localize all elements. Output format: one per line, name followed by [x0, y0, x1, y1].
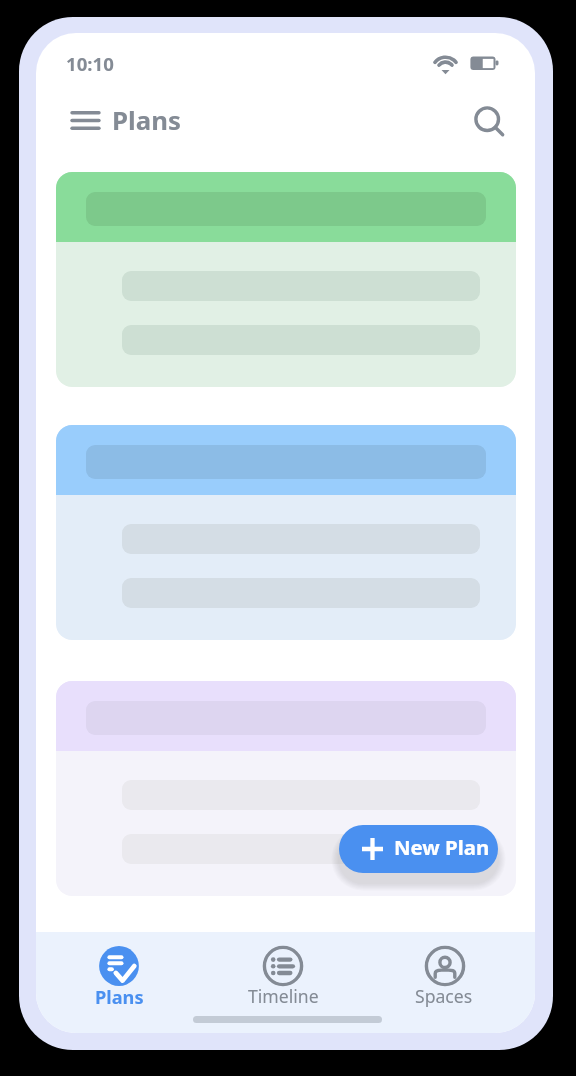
- button[interactable]: [339, 825, 498, 873]
- staticText: Plans: [95, 985, 144, 1010]
- button[interactable]: [77, 943, 161, 1021]
- button[interactable]: [403, 943, 487, 1021]
- button[interactable]: [56, 425, 516, 640]
- staticText: New Plan: [394, 833, 490, 861]
- staticText: Plans: [112, 102, 181, 137]
- button[interactable]: [241, 943, 325, 1021]
- button[interactable]: Search: [461, 93, 515, 147]
- button[interactable]: [56, 172, 516, 387]
- staticText: 10:10: [66, 51, 114, 76]
- button[interactable]: [56, 681, 516, 896]
- button[interactable]: Menu: [58, 93, 112, 147]
- staticText: Spaces: [415, 984, 473, 1008]
- staticText: Timeline: [248, 984, 319, 1008]
